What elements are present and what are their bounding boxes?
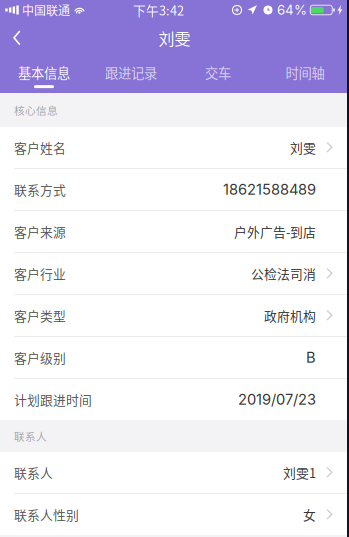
button[interactable]: 联系人 [0, 452, 349, 493]
staticText: 64% [277, 2, 307, 18]
button[interactable]: 客户来源 [0, 211, 349, 252]
staticText: 计划跟进时间 [14, 390, 92, 409]
staticText: 核心信息 [14, 102, 58, 118]
staticText: 公检法司消 [251, 264, 316, 283]
staticText: 跟进记录 [105, 63, 157, 82]
button[interactable]: Back [0, 20, 34, 56]
staticText: 政府机构 [264, 306, 316, 325]
button[interactable]: 联系人性别 [0, 494, 349, 535]
staticText: 联系人性别 [14, 505, 79, 524]
staticText: 下午3:42 [133, 1, 184, 19]
staticText: 联系人 [14, 428, 47, 444]
staticText: 交车 [205, 63, 231, 82]
staticText: 刘雯 [158, 26, 190, 50]
button[interactable]: 跟进记录 [87, 56, 174, 93]
staticText: 2019/07/23 [238, 391, 316, 408]
staticText: 户外广告-到店 [234, 222, 316, 241]
staticText: 联系方式 [14, 180, 66, 199]
button[interactable]: 客户行业 [0, 253, 349, 294]
button[interactable]: 时间轴 [261, 56, 348, 93]
staticText: 客户类型 [14, 306, 66, 325]
staticText: B [306, 349, 316, 366]
staticText: 刘雯1 [283, 463, 316, 482]
button[interactable]: 客户类型 [0, 295, 349, 336]
button[interactable]: 基本信息 [0, 56, 87, 93]
staticText: 客户姓名 [14, 138, 66, 157]
staticText: 刘雯 [290, 138, 316, 157]
button[interactable]: 联系方式 [0, 169, 349, 210]
button[interactable]: 客户级别 [0, 337, 349, 378]
staticText: 18621588489 [223, 181, 316, 198]
staticText: 客户行业 [14, 264, 66, 283]
button[interactable]: 计划跟进时间 [0, 379, 349, 420]
staticText: 女 [303, 505, 316, 524]
staticText: 基本信息 [18, 63, 70, 82]
button[interactable]: 交车 [174, 56, 261, 93]
button[interactable]: 客户姓名 [0, 127, 349, 168]
staticText: 中国联通 [22, 1, 70, 19]
staticText: 客户级别 [14, 348, 66, 367]
staticText: 客户来源 [14, 222, 66, 241]
staticText: 联系人 [14, 463, 53, 482]
staticText: 时间轴 [285, 63, 324, 82]
